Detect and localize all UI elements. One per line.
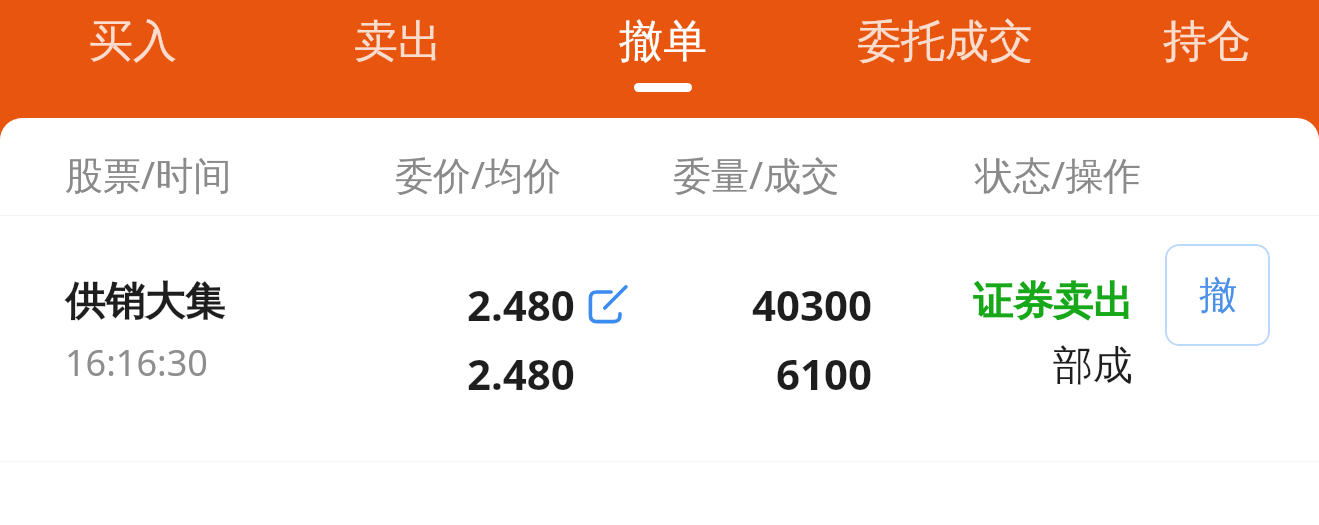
- button[interactable]: 委托成交: [795, 0, 1095, 120]
- button[interactable]: 撤: [1165, 244, 1270, 346]
- staticText: 2.480: [467, 345, 575, 402]
- staticText: 6100: [776, 345, 873, 402]
- button[interactable]: 持仓: [1095, 0, 1319, 120]
- staticText: 16:16:30: [65, 338, 208, 387]
- staticText: 部成: [1053, 340, 1133, 390]
- button[interactable]: 卖出: [265, 0, 530, 120]
- staticText: 撤单: [619, 14, 707, 69]
- staticText: 委量/成交: [673, 148, 840, 200]
- staticText: 2.480: [467, 276, 575, 333]
- staticText: 卖出: [354, 14, 442, 69]
- staticText: 买入: [89, 14, 177, 69]
- staticText: 股票/时间: [65, 148, 232, 200]
- staticText: 40300: [752, 276, 873, 333]
- staticText: 供销大集: [65, 276, 225, 326]
- button[interactable]: 修改委托价: [588, 284, 628, 324]
- button[interactable]: 供销大集: [0, 216, 1319, 461]
- button[interactable]: 买入: [0, 0, 265, 120]
- staticText: 状态/操作: [975, 148, 1142, 200]
- button[interactable]: 撤单: [530, 0, 795, 120]
- staticText: 证券卖出: [973, 276, 1133, 326]
- staticText: 委价/均价: [395, 148, 562, 200]
- staticText: 委托成交: [857, 14, 1033, 69]
- staticText: 持仓: [1163, 14, 1251, 69]
- staticText: 撤: [1199, 271, 1237, 319]
